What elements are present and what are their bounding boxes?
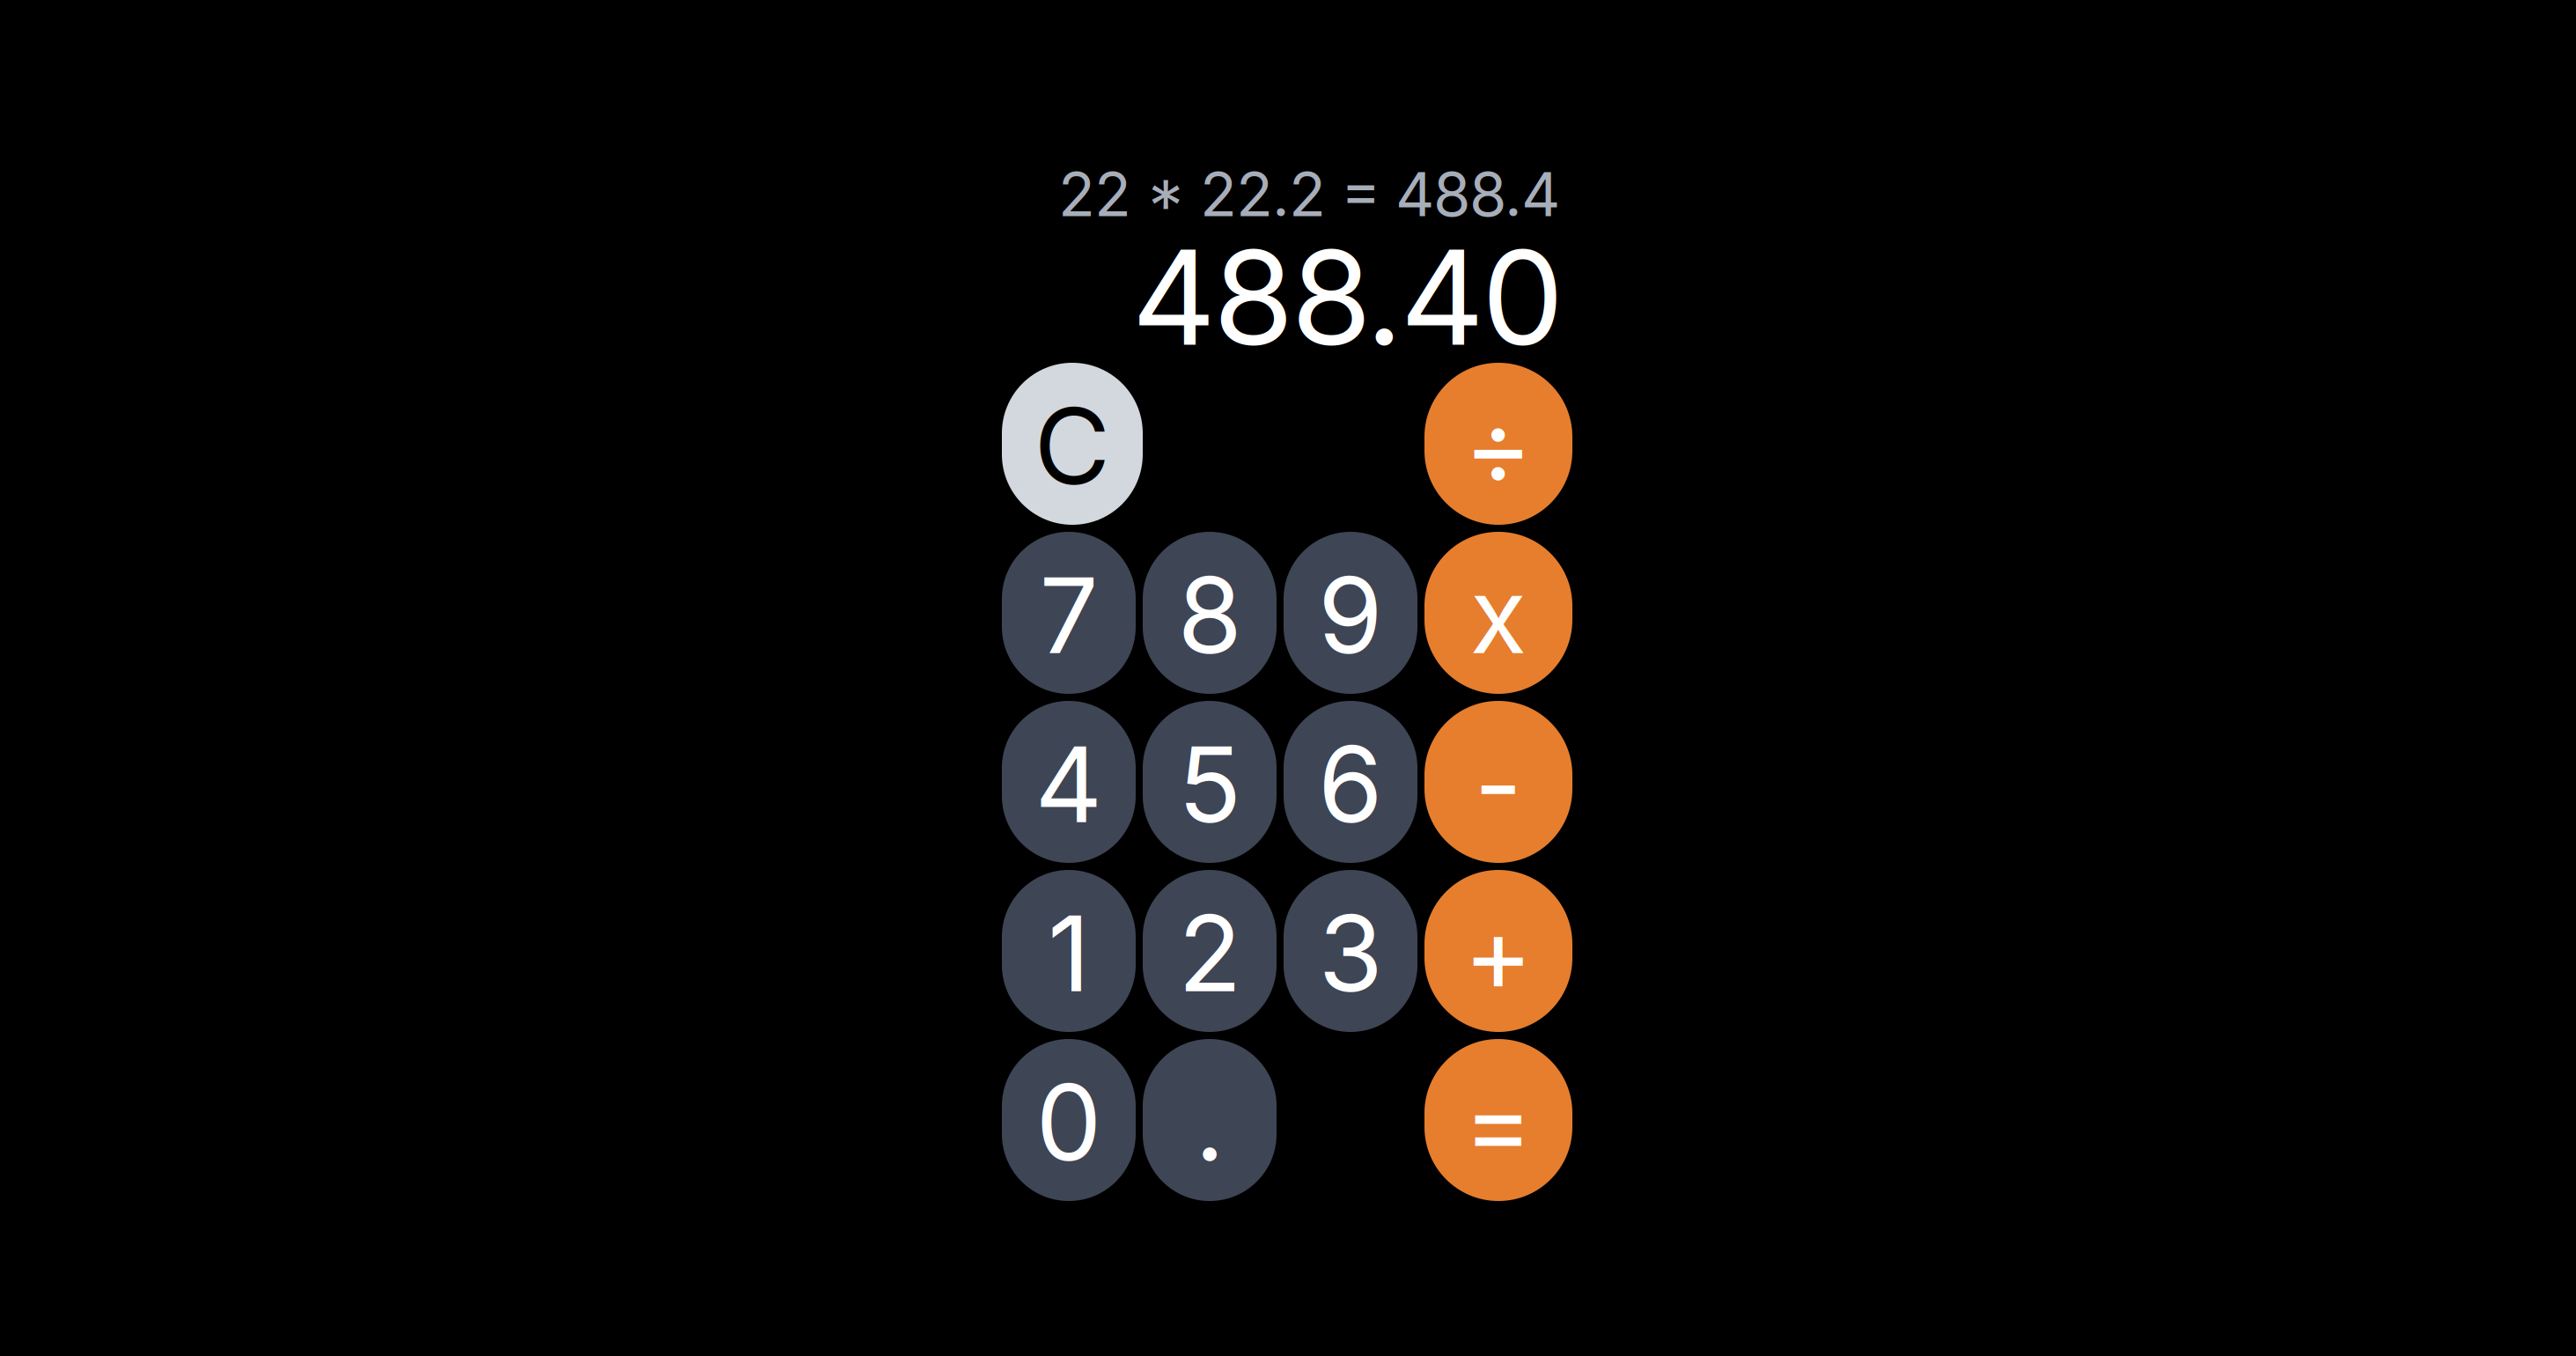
button[interactable]: 1 bbox=[1002, 870, 1136, 1032]
button[interactable]: 4 bbox=[1002, 701, 1136, 863]
staticText: . bbox=[1195, 1059, 1225, 1185]
staticText: + bbox=[1464, 890, 1533, 1016]
button[interactable]: 8 bbox=[1143, 532, 1277, 694]
button[interactable]: 0 bbox=[1002, 1039, 1136, 1201]
button[interactable]: 2 bbox=[1143, 870, 1277, 1032]
staticText: 6 bbox=[1318, 721, 1383, 847]
staticText: ÷ bbox=[1464, 383, 1533, 509]
staticText: x bbox=[1470, 552, 1527, 678]
staticText: = bbox=[1464, 1059, 1533, 1185]
button[interactable]: 9 bbox=[1284, 532, 1417, 694]
staticText: 488.40 bbox=[1132, 218, 1564, 376]
staticText: 1 bbox=[1048, 890, 1090, 1016]
staticText: 3 bbox=[1318, 890, 1383, 1016]
staticText: C bbox=[1034, 383, 1111, 509]
staticText: 9 bbox=[1318, 552, 1383, 678]
staticText: 8 bbox=[1178, 552, 1242, 678]
button[interactable]: - bbox=[1424, 701, 1572, 863]
button[interactable]: + bbox=[1424, 870, 1572, 1032]
staticText: 5 bbox=[1178, 721, 1241, 847]
button[interactable]: . bbox=[1143, 1039, 1277, 1201]
button[interactable]: 3 bbox=[1284, 870, 1417, 1032]
button[interactable]: x bbox=[1424, 532, 1572, 694]
button[interactable]: = bbox=[1424, 1039, 1572, 1201]
staticText: 7 bbox=[1039, 552, 1098, 678]
staticText: - bbox=[1474, 721, 1523, 847]
staticText: 22 * 22.2 = 488.4 bbox=[1058, 158, 1560, 231]
staticText: 4 bbox=[1035, 721, 1103, 847]
button[interactable]: ÷ bbox=[1424, 363, 1572, 525]
button[interactable]: 6 bbox=[1284, 701, 1417, 863]
staticText: 0 bbox=[1036, 1059, 1102, 1185]
staticText: 2 bbox=[1178, 890, 1241, 1016]
button[interactable]: 5 bbox=[1143, 701, 1277, 863]
button[interactable]: 7 bbox=[1002, 532, 1136, 694]
button[interactable]: C bbox=[1002, 363, 1143, 525]
